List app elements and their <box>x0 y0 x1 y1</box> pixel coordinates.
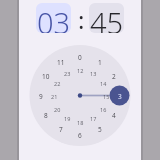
button[interactable]: 8 <box>36 109 56 121</box>
staticText: 5 <box>98 125 102 134</box>
staticText: 15 <box>103 93 110 100</box>
staticText: 16 <box>100 106 107 113</box>
button[interactable]: 15 <box>96 90 116 102</box>
button[interactable]: 5 <box>90 123 110 135</box>
staticText: : <box>78 3 85 33</box>
staticText: 1 <box>98 58 102 67</box>
button[interactable]: 1 <box>90 56 110 68</box>
button[interactable]: 17 <box>83 112 103 124</box>
staticText: 0 <box>78 53 82 62</box>
button[interactable]: 23 <box>57 67 77 79</box>
staticText: 3 <box>118 92 122 101</box>
button[interactable]: 3 <box>110 90 130 102</box>
staticText: 10 <box>42 72 50 81</box>
button[interactable]: 9 <box>31 90 51 102</box>
button[interactable]: 12 <box>70 64 90 76</box>
button[interactable]: 21 <box>44 90 64 102</box>
staticText: 03 <box>37 3 71 33</box>
button[interactable]: 22 <box>47 77 67 89</box>
button[interactable]: 4 <box>104 109 124 121</box>
staticText: 21 <box>51 93 58 100</box>
staticText: 19 <box>64 115 71 122</box>
staticText: 9 <box>39 92 43 101</box>
button[interactable]: 11 <box>51 56 71 68</box>
button[interactable]: 0 <box>70 51 90 63</box>
button[interactable]: 18 <box>70 116 90 128</box>
staticText: 11 <box>57 58 65 67</box>
button[interactable]: 6 <box>70 129 90 141</box>
button[interactable]: 7 <box>51 123 71 135</box>
staticText: 14 <box>100 80 107 87</box>
button[interactable]: 10 <box>36 70 56 82</box>
button[interactable]: 20 <box>47 103 67 115</box>
button[interactable]: 19 <box>57 112 77 124</box>
staticText: 20 <box>54 106 61 113</box>
button[interactable]: 14 <box>93 77 113 89</box>
staticText: 8 <box>44 111 48 120</box>
staticText: 23 <box>64 70 71 77</box>
staticText: 2 <box>112 72 116 81</box>
staticText: 6 <box>78 131 82 140</box>
staticText: 22 <box>54 80 61 87</box>
staticText: 18 <box>77 119 84 126</box>
button[interactable]: 03 <box>36 3 71 33</box>
staticText: 45 <box>90 3 124 33</box>
staticText: 7 <box>59 125 63 134</box>
staticText: 17 <box>90 115 97 122</box>
button[interactable]: 2 <box>104 70 124 82</box>
button[interactable]: 16 <box>93 103 113 115</box>
button[interactable]: 45 <box>89 3 124 33</box>
staticText: 4 <box>112 111 116 120</box>
button[interactable]: 13 <box>83 67 103 79</box>
staticText: 13 <box>90 70 97 77</box>
staticText: 12 <box>77 67 84 74</box>
